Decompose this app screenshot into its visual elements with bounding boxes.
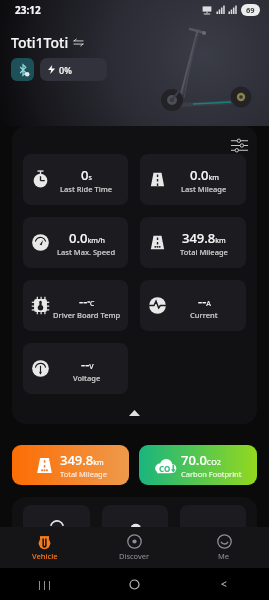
staticText: CO — [159, 463, 171, 474]
staticText: Discover — [119, 551, 150, 561]
staticText: 23:12 — [15, 3, 41, 17]
staticText: --V — [81, 355, 94, 373]
button[interactable]: 349.8km — [140, 217, 246, 268]
button[interactable]: CO — [139, 445, 257, 485]
button[interactable] — [23, 505, 90, 549]
button[interactable]: 349.8km — [12, 445, 129, 485]
button[interactable]: Settings — [231, 137, 248, 154]
staticText: Total Mileage — [60, 469, 107, 479]
staticText: Driver Board Temp — [53, 310, 121, 320]
button[interactable]: Discover — [89, 527, 179, 568]
staticText: 70.0CO2 — [181, 451, 221, 469]
staticText: < — [221, 577, 227, 591]
staticText: 0.0km/h — [69, 229, 105, 247]
staticText: 0% — [59, 64, 72, 76]
staticText: 349.8km — [60, 451, 104, 469]
staticText: Total Mileage — [180, 247, 228, 257]
staticText: Last Ride Time — [60, 184, 113, 194]
staticText: --A — [198, 292, 211, 310]
button[interactable]: --V — [23, 343, 128, 394]
staticText: Vehicle — [32, 551, 58, 561]
button[interactable]: Vehicle — [0, 527, 89, 568]
staticText: Me — [218, 551, 230, 561]
staticText: 0s — [81, 166, 92, 184]
staticText: 69 — [246, 5, 255, 15]
staticText: 0.0km — [190, 166, 219, 184]
staticText: Current — [190, 310, 218, 320]
button[interactable]: Bluetooth disconnected — [11, 58, 34, 81]
button[interactable]: Switch vehicle — [72, 36, 85, 49]
button[interactable]: 0.0km/h — [23, 217, 128, 268]
button[interactable]: Me — [179, 527, 269, 568]
button[interactable]: --A — [140, 280, 246, 331]
staticText: --℃ — [79, 292, 95, 310]
button[interactable] — [180, 505, 246, 549]
staticText: Voltage — [73, 373, 101, 383]
staticText: ||| — [37, 578, 52, 590]
button[interactable]: 0% — [40, 58, 107, 81]
button[interactable]: --℃ — [23, 280, 128, 331]
button[interactable]: 0.0km — [140, 154, 246, 205]
staticText: Last Max. Speed — [57, 247, 116, 257]
button[interactable]: 0s — [23, 154, 128, 205]
button[interactable] — [102, 505, 168, 549]
staticText: Carbon Footprint — [181, 469, 242, 479]
staticText: Toti1Toti — [11, 33, 69, 52]
staticText: 349.8km — [182, 229, 226, 247]
staticText: Last Mileage — [181, 184, 227, 194]
